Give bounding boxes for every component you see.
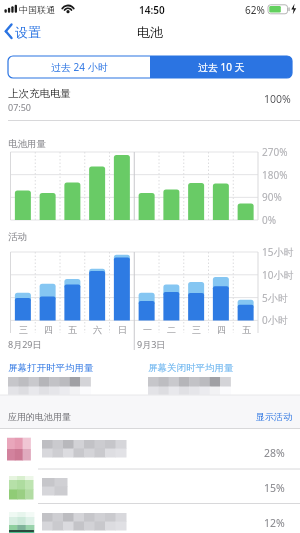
staticText: 三 bbox=[192, 324, 201, 335]
staticText: 日 bbox=[118, 324, 127, 335]
staticText: 三 bbox=[19, 324, 28, 335]
staticText: 四 bbox=[217, 324, 226, 335]
staticText: 上次充电电量 bbox=[8, 87, 71, 100]
staticText: 07:50 bbox=[8, 101, 32, 113]
staticText: 过去 24 小时 bbox=[51, 60, 108, 74]
staticText: 中国联通 bbox=[19, 4, 55, 15]
staticText: 显示活动 bbox=[256, 411, 292, 422]
staticText: 一 bbox=[143, 324, 152, 335]
staticText: 电池 bbox=[137, 24, 163, 40]
staticText: 设置 bbox=[15, 24, 41, 40]
button[interactable] bbox=[240, 405, 300, 425]
staticText: 屏幕打开时平均用量 bbox=[8, 362, 94, 374]
staticText: 四 bbox=[44, 324, 53, 335]
staticText: 12% bbox=[264, 516, 285, 530]
button[interactable] bbox=[0, 429, 300, 469]
staticText: 14:50 bbox=[139, 3, 165, 17]
staticText: 62% bbox=[245, 3, 265, 17]
staticText: 应用的电池用量 bbox=[8, 411, 71, 422]
staticText: 二 bbox=[167, 324, 176, 335]
staticText: 电池用量 bbox=[8, 138, 46, 150]
button[interactable] bbox=[0, 469, 300, 503]
staticText: 90% bbox=[262, 190, 282, 204]
button[interactable] bbox=[150, 56, 292, 78]
staticText: 28% bbox=[264, 446, 285, 460]
staticText: 屏幕关闭时平均用量 bbox=[148, 362, 234, 374]
staticText: 六 bbox=[93, 324, 102, 335]
staticText: 0小时 bbox=[262, 313, 288, 327]
button[interactable] bbox=[8, 56, 150, 78]
button[interactable] bbox=[0, 504, 300, 533]
staticText: 过去 10 天 bbox=[198, 60, 245, 74]
staticText: 15% bbox=[264, 481, 285, 495]
staticText: 270% bbox=[262, 145, 288, 159]
staticText: 五 bbox=[242, 324, 251, 335]
staticText: 8月29日 bbox=[8, 338, 42, 350]
staticText: 活动 bbox=[8, 231, 27, 243]
staticText: 15小时 bbox=[262, 245, 294, 259]
staticText: 180% bbox=[262, 168, 288, 182]
staticText: 五 bbox=[68, 324, 77, 335]
staticText: 0% bbox=[262, 213, 277, 227]
button[interactable] bbox=[0, 18, 60, 44]
staticText: 100% bbox=[264, 92, 291, 106]
staticText: 9月3日 bbox=[137, 338, 166, 350]
staticText: 5小时 bbox=[262, 291, 288, 305]
staticText: 10小时 bbox=[262, 268, 294, 282]
